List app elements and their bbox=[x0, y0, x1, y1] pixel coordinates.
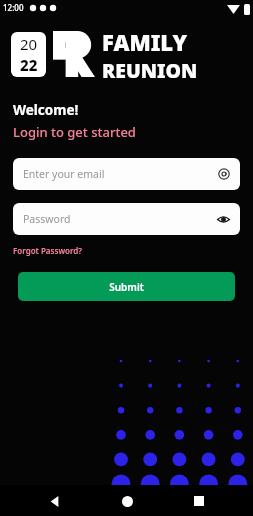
staticText: 22 bbox=[20, 55, 38, 75]
staticText: Enter your email bbox=[23, 167, 218, 181]
button[interactable]: Recents bbox=[185, 487, 213, 515]
staticText: Welcome! bbox=[13, 101, 79, 119]
button[interactable]: Enter your email bbox=[13, 158, 240, 190]
button[interactable]: Password bbox=[13, 203, 240, 235]
staticText: Password bbox=[23, 212, 217, 226]
other: Email bbox=[218, 168, 230, 180]
staticText: Submit bbox=[109, 280, 144, 294]
button[interactable]: Show password bbox=[217, 213, 230, 226]
staticText: FAMILY bbox=[102, 27, 188, 57]
button[interactable]: Home bbox=[113, 487, 141, 515]
staticText: Forgot Password? bbox=[13, 245, 82, 256]
staticText: Login to get started bbox=[13, 123, 136, 141]
staticText: 12:00 bbox=[3, 2, 24, 13]
button[interactable]: Forgot Password? bbox=[13, 245, 82, 256]
staticText: 20 bbox=[20, 34, 38, 54]
staticText: REUNION bbox=[102, 57, 198, 81]
button[interactable]: Back bbox=[40, 487, 68, 515]
button[interactable]: Submit bbox=[18, 272, 235, 301]
